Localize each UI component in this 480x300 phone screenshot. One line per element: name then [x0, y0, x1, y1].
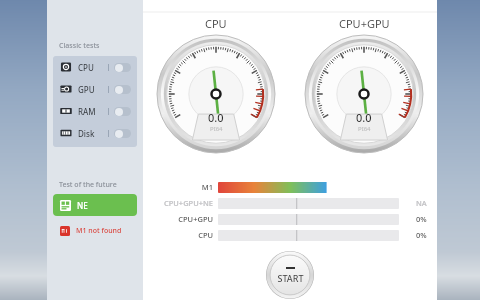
button[interactable]: CPU — [149, 229, 427, 241]
staticText: CPU+GPU — [339, 16, 390, 31]
button[interactable]: Toggle Disk — [114, 129, 131, 138]
staticText: Test of the future — [59, 180, 117, 190]
button[interactable]: CPU+GPU+NE — [149, 197, 427, 209]
button[interactable]: CPU — [53, 56, 137, 78]
button[interactable]: M1 not found — [53, 222, 137, 240]
button[interactable]: CPU gauge — [157, 35, 275, 153]
button[interactable]: GPU — [53, 78, 137, 100]
staticText: M1 — [201, 182, 213, 192]
staticText: CPU — [198, 230, 213, 240]
staticText: NE — [77, 200, 88, 211]
button[interactable]: RAM — [53, 100, 137, 122]
staticText: CPU — [205, 16, 227, 31]
button[interactable]: M1 — [149, 181, 427, 193]
staticText: CPU+GPU — [178, 214, 213, 224]
staticText: CPU — [78, 62, 94, 73]
button[interactable]: Toggle GPU — [114, 85, 131, 94]
button[interactable]: Disk — [53, 122, 137, 144]
button[interactable]: Toggle CPU — [114, 63, 131, 72]
staticText: 0% — [416, 230, 427, 240]
staticText: 0% — [416, 214, 427, 224]
staticText: M1 not found — [76, 226, 122, 236]
staticText: NA — [416, 198, 427, 208]
button[interactable]: START — [266, 251, 314, 299]
staticText: 0.0 — [208, 110, 224, 125]
button[interactable]: NE — [53, 194, 137, 216]
button[interactable]: Toggle RAM — [114, 107, 131, 116]
staticText: 0.0 — [356, 110, 372, 125]
staticText: PI64 — [210, 125, 223, 133]
staticText: Disk — [78, 128, 95, 139]
staticText: CPU+GPU+NE — [163, 198, 213, 208]
button[interactable]: CPU+GPU gauge — [305, 35, 423, 153]
staticText: GPU — [78, 84, 95, 95]
staticText: RAM — [78, 106, 96, 117]
button[interactable]: CPU+GPU — [149, 213, 427, 225]
staticText: START — [277, 272, 304, 284]
staticText: Classic tests — [59, 41, 100, 51]
staticText: PI64 — [358, 125, 371, 133]
